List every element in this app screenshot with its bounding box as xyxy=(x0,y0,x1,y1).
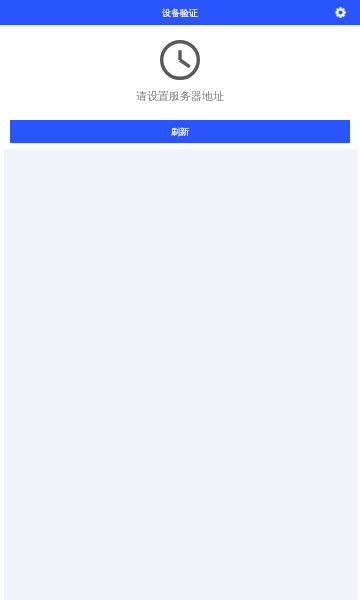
staticText: 刷新 xyxy=(171,126,189,137)
button[interactable]: 刷新 xyxy=(10,120,350,143)
staticText: 请设置服务器地址 xyxy=(0,89,360,103)
staticText: 设备验证 xyxy=(162,7,198,18)
button[interactable]: Settings xyxy=(335,7,346,18)
